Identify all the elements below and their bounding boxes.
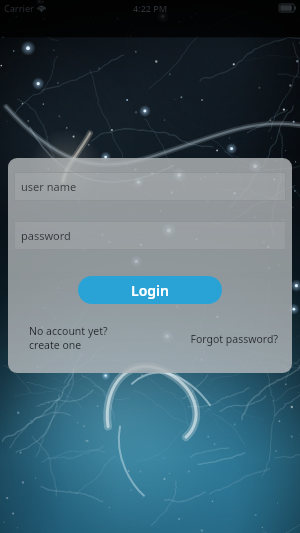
staticText: Login [131,281,169,300]
staticText: 4:22 PM [133,2,168,14]
button[interactable]: Login [78,276,222,304]
button[interactable]: No account yet? [14,324,112,354]
staticText: Carrier [4,2,34,14]
staticText: create one [29,338,82,352]
staticText: No account yet? [29,324,108,338]
button[interactable]: User name field [14,172,286,201]
button[interactable]: Forgot password? [190,332,286,348]
button[interactable]: Password field [14,221,286,250]
staticText: Forgot password? [190,332,278,346]
staticText: user name [21,179,77,194]
staticText: password [21,228,71,243]
